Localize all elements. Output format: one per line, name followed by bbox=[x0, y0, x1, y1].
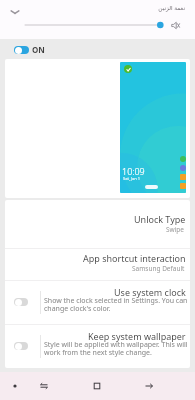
button[interactable]: ON bbox=[14, 44, 45, 55]
staticText: Show the clock selected in Settings. You… bbox=[44, 296, 190, 313]
button[interactable]: Use system clock bbox=[5, 281, 190, 324]
staticText: Samsung Default bbox=[132, 264, 185, 273]
staticText: Style will be applied with wallpaper. Th… bbox=[44, 340, 190, 357]
button[interactable]: 10:09 bbox=[120, 62, 186, 193]
staticText: App shortcut interaction bbox=[83, 252, 186, 264]
staticText: Swipe bbox=[166, 225, 185, 234]
button[interactable]: Recents bbox=[3, 374, 27, 398]
button[interactable]: Mute bbox=[168, 18, 183, 33]
staticText: Use system clock bbox=[114, 286, 186, 298]
staticText: 10:09 bbox=[122, 165, 145, 177]
staticText: Sat, Jan 1 bbox=[123, 176, 141, 181]
button[interactable]: Back bbox=[137, 374, 161, 398]
button[interactable]: App shortcut interaction bbox=[5, 249, 190, 280]
button[interactable]: Collapse bbox=[5, 2, 24, 21]
staticText: نغمة الزنين bbox=[145, 4, 185, 12]
button[interactable]: Switch apps bbox=[32, 374, 56, 398]
staticText: Keep system wallpaper bbox=[88, 330, 186, 342]
staticText: ON bbox=[32, 44, 45, 55]
staticText: Unlock Type bbox=[134, 213, 186, 225]
button[interactable]: Home bbox=[85, 374, 109, 398]
button[interactable]: Unlock Type bbox=[5, 200, 190, 248]
button[interactable]: Keep system wallpaper bbox=[5, 325, 190, 368]
